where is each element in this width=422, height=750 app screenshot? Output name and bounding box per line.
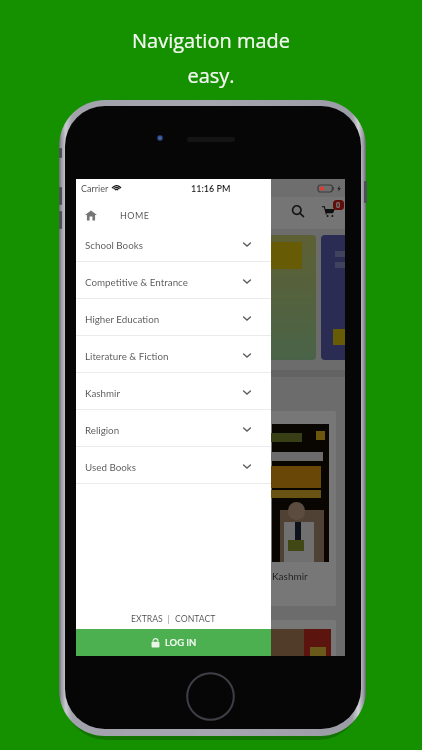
staticText: School Books [85, 239, 143, 251]
staticText: | [163, 613, 175, 623]
staticText: 11:16 PM [191, 183, 231, 194]
button[interactable]: Cart [322, 205, 335, 218]
staticText: Competitive & Entrance [85, 276, 188, 288]
button[interactable]: School Books [76, 225, 271, 262]
button[interactable]: Menu [85, 208, 97, 219]
staticText: Kashmir [272, 570, 308, 582]
staticText: LOG IN [165, 637, 197, 648]
button[interactable]: LOG IN [76, 629, 271, 656]
staticText: Navigation made [132, 27, 290, 54]
staticText: Carrier [81, 183, 109, 194]
staticText: Religion [85, 424, 120, 436]
button[interactable]: Search [292, 206, 304, 217]
staticText: HOME [120, 210, 150, 221]
button[interactable]: Kashmir [76, 373, 271, 410]
button[interactable]: Higher Education [76, 299, 271, 336]
staticText: easy. [187, 62, 235, 89]
button[interactable]: Religion [76, 410, 271, 447]
button[interactable]: CONTACT [175, 613, 216, 623]
staticText: 0 [336, 201, 341, 209]
staticText: Higher Education [85, 313, 160, 325]
button[interactable]: Literature & Fiction [76, 336, 271, 373]
button[interactable]: EXTRAS [131, 613, 163, 623]
button[interactable]: Home [186, 672, 235, 721]
button[interactable]: Competitive & Entrance [76, 262, 271, 299]
staticText: Used Books [85, 461, 136, 473]
button[interactable]: HOME [76, 197, 271, 225]
button[interactable]: Used Books [76, 447, 271, 484]
staticText: Kashmir [85, 387, 121, 399]
staticText: Literature & Fiction [85, 350, 169, 362]
